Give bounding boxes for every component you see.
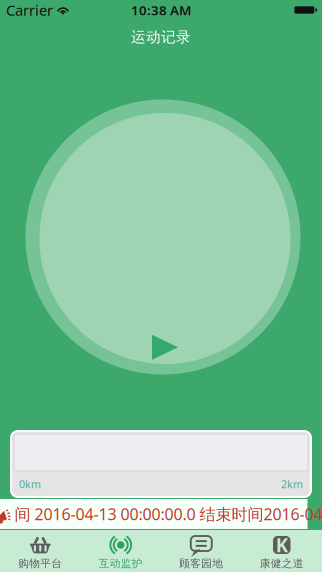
button[interactable]: 购物平台	[0, 530, 80, 572]
staticText: K	[276, 533, 288, 557]
staticText: 运动记录	[131, 28, 191, 46]
staticText: 0km	[19, 477, 41, 491]
staticText: Carrier	[6, 0, 53, 20]
button[interactable]: K	[241, 530, 322, 572]
staticText: 互动监护	[99, 557, 143, 570]
staticText: 2km	[281, 477, 303, 491]
staticText: 间 2016-04-13 00:00:00.0 结束时间2016-04-2	[14, 503, 322, 525]
button[interactable]: 顾客园地	[161, 530, 241, 572]
staticText: 10:38 AM	[131, 1, 191, 19]
staticText: 顾客园地	[179, 557, 223, 570]
staticText: 康健之道	[260, 557, 304, 570]
staticText: 购物平台	[18, 557, 62, 570]
button[interactable]: 互动监护	[80, 530, 161, 572]
